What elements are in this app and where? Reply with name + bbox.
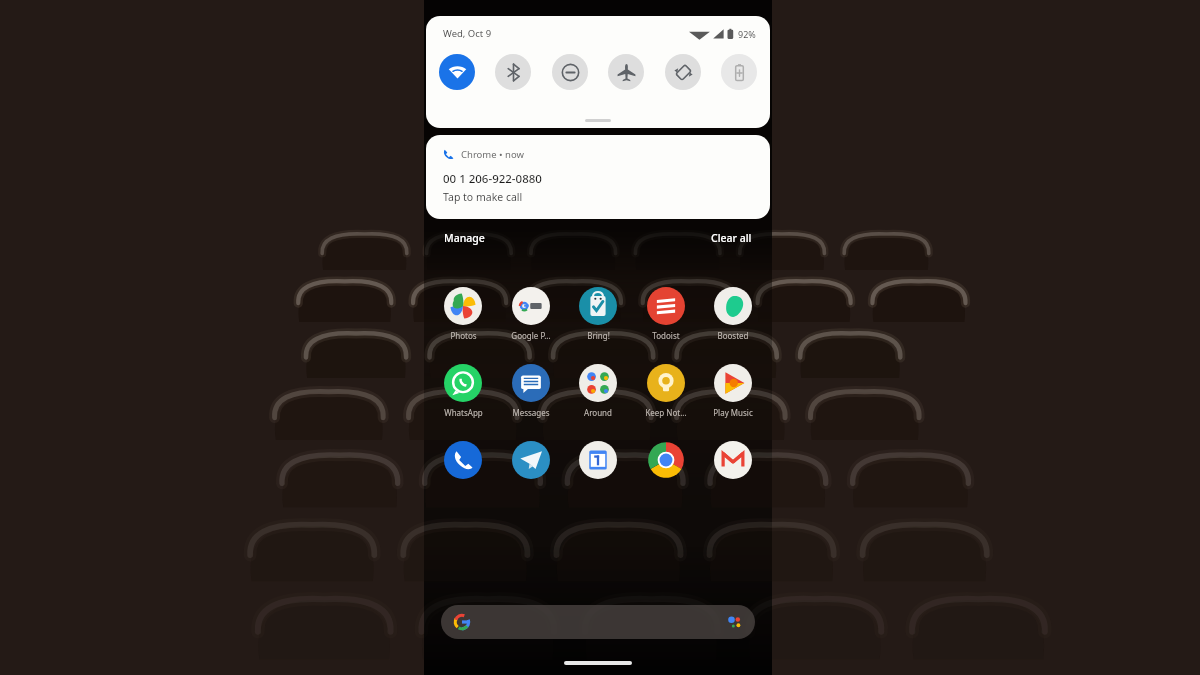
- button[interactable]: Todoist: [637, 287, 695, 341]
- button[interactable]: App: [637, 441, 695, 479]
- button[interactable]: Wi-Fi: [439, 54, 475, 90]
- staticText: Todoist: [652, 330, 680, 341]
- staticText: Wed, Oct 9: [443, 27, 492, 40]
- button[interactable]: Messages: [502, 364, 560, 418]
- button[interactable]: Bluetooth: [495, 54, 531, 90]
- staticText: Bring!: [587, 330, 610, 341]
- button[interactable]: WhatsApp: [434, 364, 492, 418]
- button[interactable]: Chrome • now: [426, 135, 770, 219]
- staticText: Keep Not...: [645, 407, 687, 418]
- button[interactable]: Airplane mode: [608, 54, 644, 90]
- staticText: Photos: [450, 330, 477, 341]
- button[interactable]: Around: [569, 364, 627, 418]
- button[interactable]: Do not disturb: [552, 54, 588, 90]
- button[interactable]: Play Music: [704, 364, 762, 418]
- button[interactable]: [441, 605, 755, 639]
- staticText: Google P...: [511, 330, 551, 341]
- button[interactable]: Bring!: [569, 287, 627, 341]
- button[interactable]: Keep Not...: [637, 364, 695, 418]
- button[interactable]: App: [704, 441, 762, 479]
- button[interactable]: Clear all: [709, 229, 754, 247]
- staticText: Play Music: [713, 407, 753, 418]
- staticText: Chrome • now: [461, 148, 525, 161]
- button[interactable]: Battery saver: [721, 54, 757, 90]
- staticText: WhatsApp: [444, 407, 483, 418]
- staticText: Tap to make call: [443, 190, 523, 204]
- staticText: Manage: [444, 231, 485, 245]
- button[interactable]: App: [569, 441, 627, 479]
- button[interactable]: Photos: [434, 287, 492, 341]
- button[interactable]: Manage: [442, 229, 487, 247]
- staticText: Messages: [512, 407, 550, 418]
- staticText: Clear all: [711, 231, 752, 245]
- button[interactable]: Boosted: [704, 287, 762, 341]
- button[interactable]: App: [502, 441, 560, 479]
- staticText: 92%: [738, 28, 756, 40]
- staticText: Around: [584, 407, 612, 418]
- button[interactable]: Auto-rotate: [665, 54, 701, 90]
- staticText: Boosted: [717, 330, 749, 341]
- button[interactable]: App: [434, 441, 492, 479]
- staticText: 00 1 206-922-0880: [443, 171, 542, 187]
- button[interactable]: Google P...: [502, 287, 560, 341]
